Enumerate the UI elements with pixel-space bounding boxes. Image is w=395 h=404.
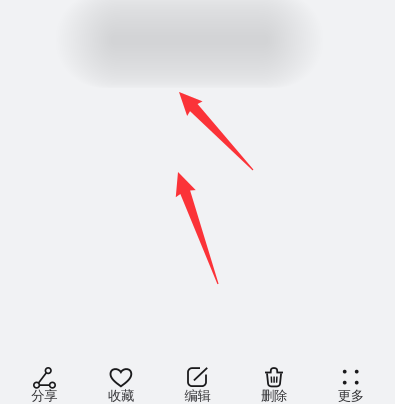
staticText: 收藏 bbox=[108, 388, 134, 404]
button[interactable]: 编辑 bbox=[159, 352, 236, 404]
staticText: 编辑 bbox=[184, 388, 210, 404]
button[interactable]: 分享 bbox=[6, 352, 83, 404]
button[interactable]: 收藏 bbox=[83, 352, 159, 404]
staticText: 更多 bbox=[338, 388, 364, 404]
staticText: 删除 bbox=[261, 388, 287, 404]
button[interactable]: 更多 bbox=[312, 352, 389, 404]
staticText: 分享 bbox=[31, 388, 57, 404]
button[interactable]: 删除 bbox=[236, 352, 312, 404]
